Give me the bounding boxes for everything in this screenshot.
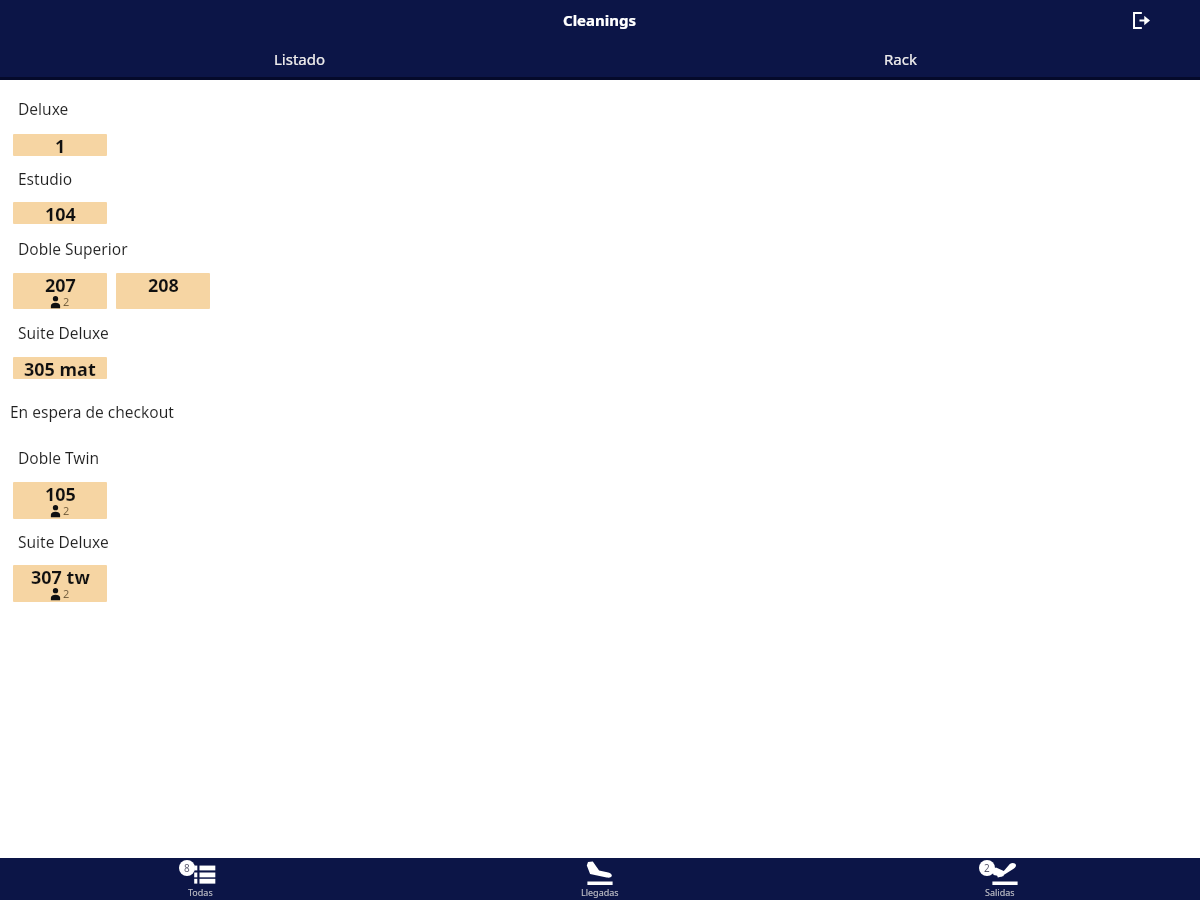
- button[interactable]: 104: [13, 202, 107, 224]
- staticText: Doble Superior: [18, 238, 128, 259]
- staticText: 1: [55, 134, 66, 156]
- staticText: 8: [184, 861, 190, 875]
- staticText: 104: [45, 202, 76, 224]
- button[interactable]: 208: [116, 273, 210, 309]
- button[interactable]: Listado: [0, 40, 600, 77]
- button[interactable]: 307 tw: [13, 565, 107, 602]
- staticText: Listado: [274, 49, 326, 69]
- staticText: Doble Twin: [18, 447, 100, 468]
- staticText: 2: [984, 861, 990, 875]
- button[interactable]: 1: [13, 134, 107, 156]
- staticText: Suite Deluxe: [18, 531, 109, 552]
- staticText: 307 tw: [31, 565, 90, 590]
- button[interactable]: 207: [13, 273, 107, 309]
- button[interactable]: 8: [0, 858, 400, 900]
- staticText: 105: [45, 482, 76, 507]
- staticText: 2: [63, 586, 70, 601]
- staticText: Cleanings: [563, 10, 637, 30]
- staticText: 2: [63, 503, 70, 518]
- staticText: Rack: [884, 49, 917, 69]
- staticText: Suite Deluxe: [18, 322, 109, 343]
- staticText: 305 mat: [24, 357, 96, 379]
- staticText: Deluxe: [18, 98, 69, 119]
- button[interactable]: Logout: [1129, 8, 1153, 32]
- button[interactable]: Rack: [600, 40, 1200, 77]
- staticText: En espera de checkout: [10, 401, 174, 422]
- staticText: 207: [45, 273, 76, 298]
- button[interactable]: 105: [13, 482, 107, 519]
- button[interactable]: 305 mat: [13, 357, 107, 379]
- staticText: 2: [63, 294, 70, 309]
- staticText: 208: [148, 273, 179, 298]
- staticText: Estudio: [18, 168, 73, 189]
- button[interactable]: Llegadas: [400, 858, 800, 900]
- staticText: Salidas: [985, 886, 1015, 898]
- staticText: Llegadas: [581, 886, 619, 898]
- button[interactable]: 2: [800, 858, 1200, 900]
- staticText: Todas: [188, 886, 213, 898]
